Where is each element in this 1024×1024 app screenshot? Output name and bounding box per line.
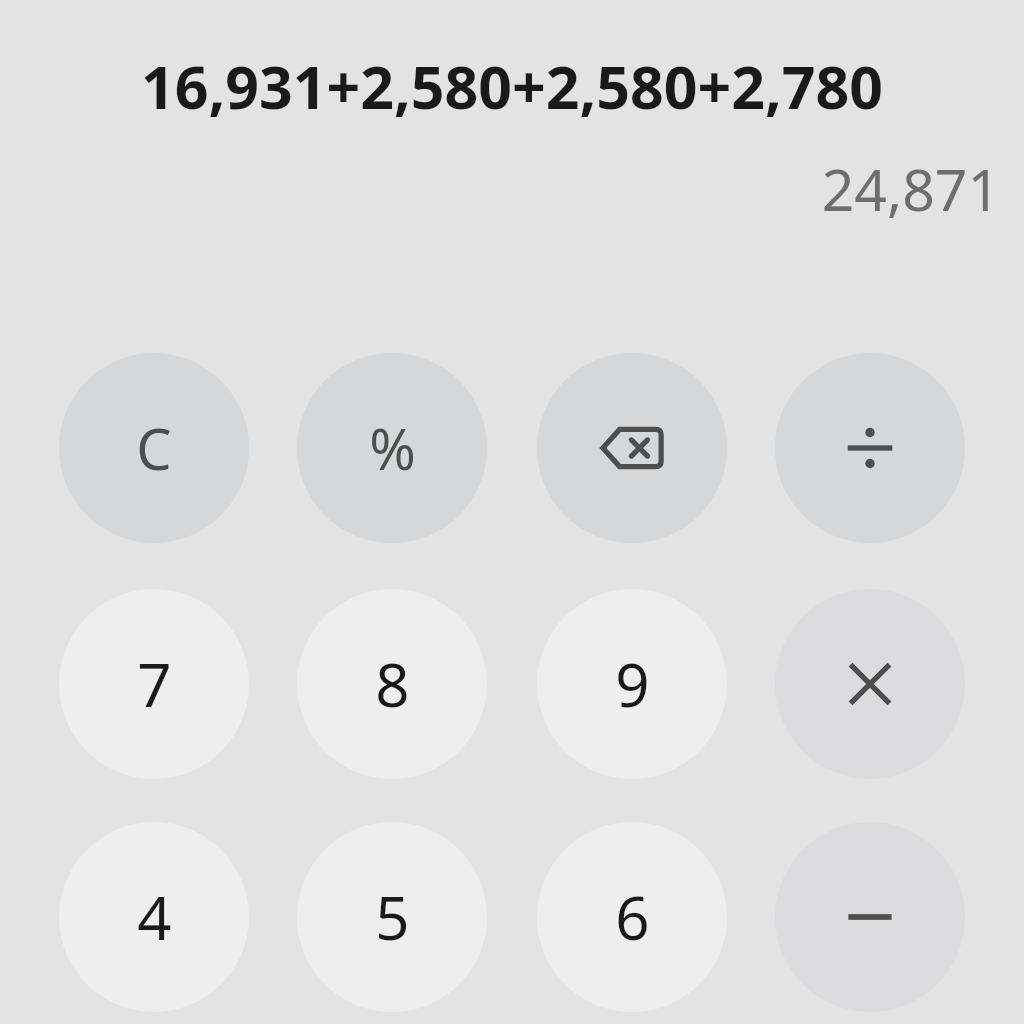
button[interactable]: Multiply bbox=[775, 589, 965, 779]
button[interactable]: 5 bbox=[297, 822, 487, 1012]
staticText: 16,931+2,580+2,580+2,780 bbox=[24, 46, 1000, 126]
button[interactable]: 9 bbox=[537, 589, 727, 779]
button[interactable]: Percent bbox=[297, 353, 487, 543]
button[interactable]: 6 bbox=[537, 822, 727, 1012]
staticText: 4 bbox=[137, 876, 172, 958]
button[interactable]: Minus bbox=[775, 822, 965, 1012]
staticText: 8 bbox=[375, 643, 410, 725]
button[interactable]: 8 bbox=[297, 589, 487, 779]
staticText: 9 bbox=[615, 643, 650, 725]
staticText: 6 bbox=[615, 876, 650, 958]
button[interactable]: 4 bbox=[59, 822, 249, 1012]
button[interactable]: 7 bbox=[59, 589, 249, 779]
staticText: 24,871 bbox=[24, 150, 1000, 228]
button[interactable]: Backspace bbox=[537, 353, 727, 543]
staticText: C bbox=[136, 410, 172, 486]
button[interactable]: Divide bbox=[775, 353, 965, 543]
button[interactable]: Clear bbox=[59, 353, 249, 543]
staticText: 7 bbox=[137, 643, 172, 725]
staticText: 5 bbox=[375, 876, 410, 958]
staticText: % bbox=[369, 410, 416, 486]
